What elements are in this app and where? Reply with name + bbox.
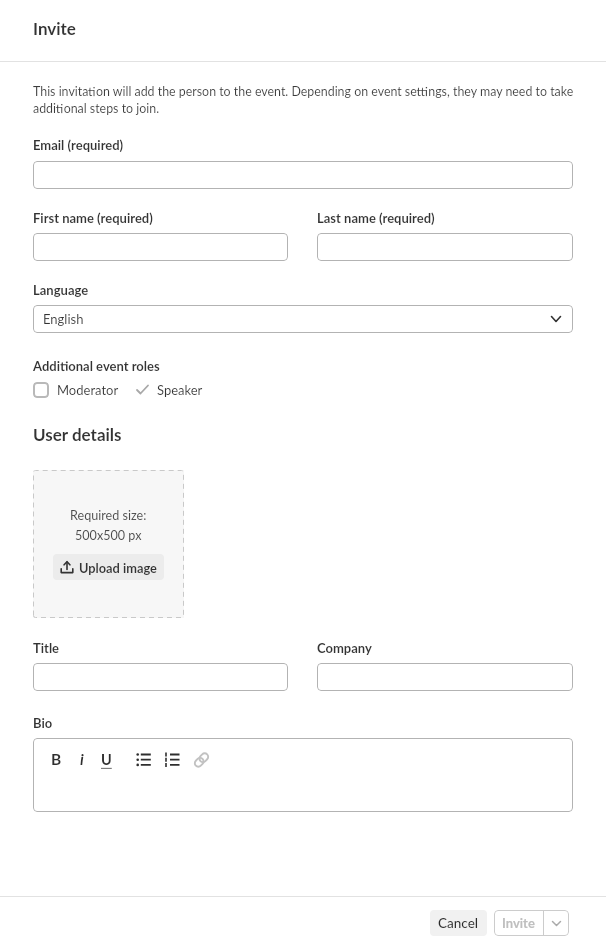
staticText: Language [33, 282, 89, 298]
button[interactable] [317, 233, 573, 261]
button[interactable]: Invite [494, 910, 543, 936]
button[interactable] [317, 663, 573, 691]
button[interactable]: B [33, 738, 573, 812]
button[interactable]: English [33, 305, 573, 333]
staticText: Speaker [157, 382, 203, 398]
staticText: Email (required) [33, 137, 124, 153]
staticText: Required size: [70, 508, 147, 523]
staticText: Invite [33, 18, 76, 38]
staticText: This invitation will add the person to t… [33, 84, 573, 116]
staticText: First name (required) [33, 210, 153, 226]
staticText: 500x500 px [75, 528, 142, 543]
staticText: i [80, 750, 84, 769]
staticText: Title [33, 640, 60, 656]
staticText: U [101, 751, 112, 768]
staticText: Invite [502, 915, 535, 931]
staticText: Company [317, 640, 372, 656]
button[interactable] [33, 382, 49, 398]
button[interactable] [33, 161, 573, 189]
staticText: User details [33, 424, 122, 444]
button[interactable]: Upload image [53, 554, 164, 580]
staticText: Additional event roles [33, 358, 160, 374]
staticText: Bio [33, 715, 53, 731]
staticText: Cancel [438, 915, 479, 931]
staticText: English [43, 311, 84, 327]
button[interactable]: Cancel [430, 910, 487, 936]
staticText: B [51, 750, 62, 769]
staticText: Last name (required) [317, 210, 435, 226]
staticText: Upload image [79, 560, 157, 575]
staticText: Moderator [57, 382, 119, 398]
button[interactable] [33, 663, 288, 691]
button[interactable] [33, 233, 288, 261]
button[interactable] [544, 910, 569, 936]
